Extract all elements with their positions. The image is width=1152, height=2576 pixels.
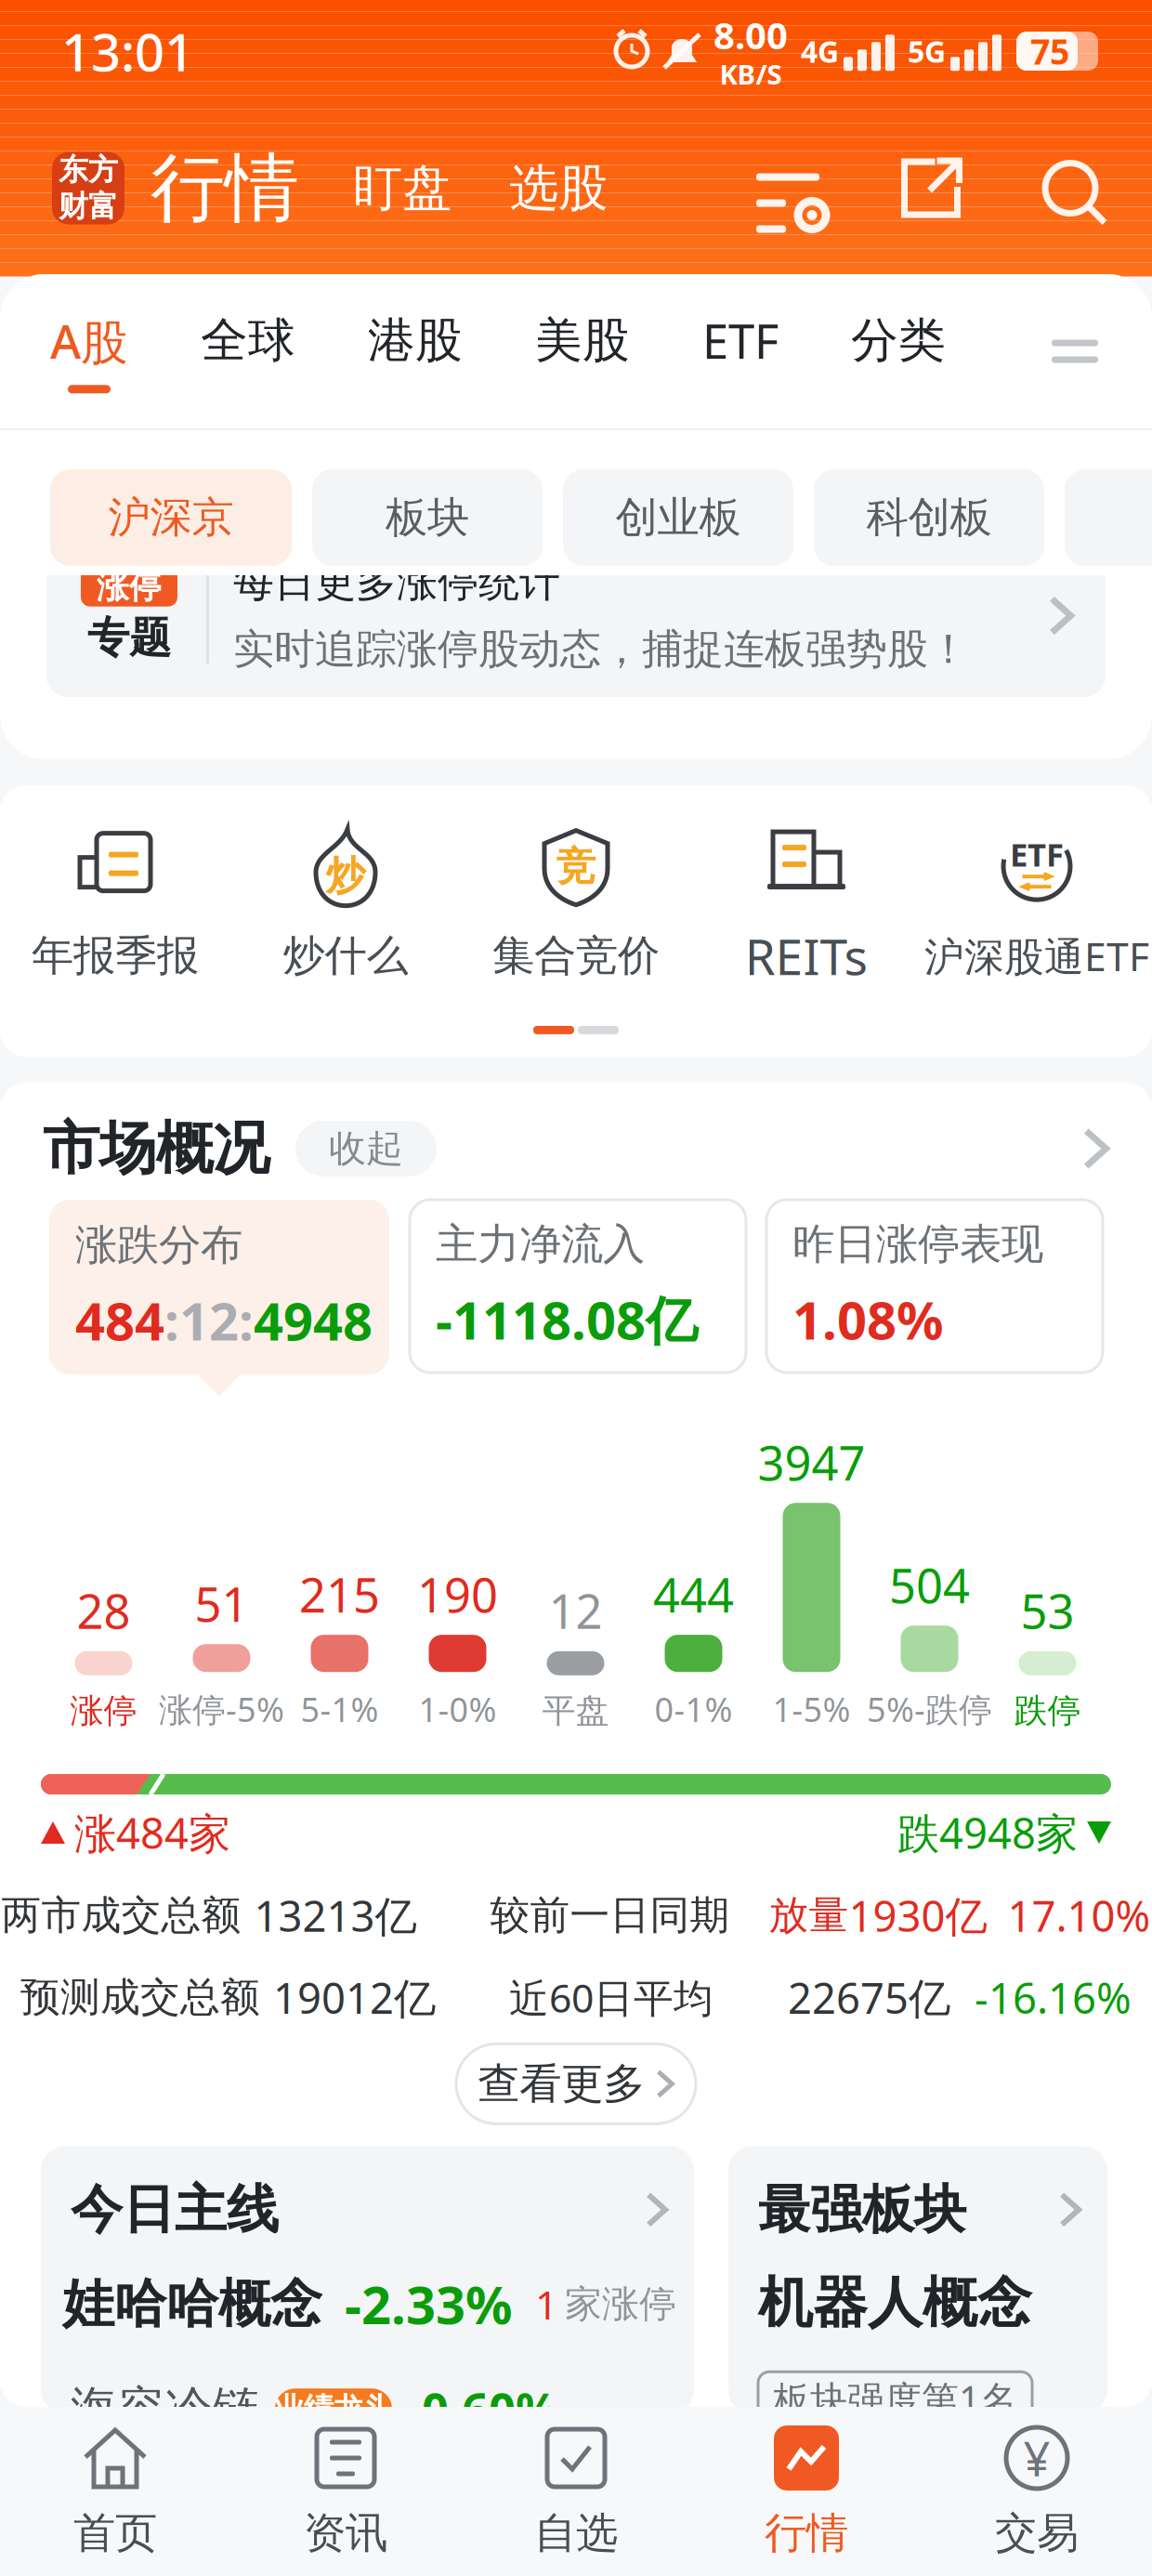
staticText: REITs [745,923,868,989]
staticText: 75 [1030,28,1069,74]
staticText: 两市成交总额 [1,1891,241,1940]
staticText: -1118.08亿 [436,1285,698,1354]
staticText: 家涨停 [565,2281,676,2327]
staticText: 444 [653,1563,734,1626]
staticText: 13:01 [61,17,194,86]
staticText: 5%-跌停 [867,1687,992,1731]
button[interactable]: 炒 [230,826,461,982]
button[interactable]: 年报季报 [0,826,230,982]
staticText: 交易 [995,2507,1079,2559]
button[interactable]: 板块 [312,469,543,566]
staticText: 504 [889,1554,970,1616]
staticText: 1930亿 [849,1887,987,1943]
staticText: 盯盘 [353,158,452,219]
staticText: 沪深股通ETF [924,929,1149,982]
button[interactable]: 美股 [463,312,630,391]
staticText: 跌停 [1014,1690,1081,1731]
staticText: 实时追踪涨停股动态，捕捉连板强势股！ [233,624,969,674]
staticText: ETF [1010,833,1064,876]
staticText: 215 [299,1563,380,1626]
staticText: 首页 [73,2507,157,2559]
staticText: 沪深京 [108,492,234,544]
button[interactable]: 筛选设置 [751,156,825,221]
button[interactable]: 收起 [269,1121,437,1176]
staticText: 放量 [769,1891,849,1940]
button[interactable]: 最强板块 [728,2146,1107,2414]
staticText: 板块强度第1名 [773,2374,1017,2423]
staticText: 创业板 [615,492,741,544]
staticText: 涨停 [70,1690,137,1731]
staticText: 资讯 [304,2507,387,2559]
staticText: 每日更多涨停统计 [233,557,560,607]
button[interactable]: 资讯 [230,2424,461,2559]
button[interactable]: REITs [691,819,922,989]
staticText: 美股 [535,312,630,369]
staticText: 4G [801,31,839,71]
button[interactable]: 选股 [452,158,608,219]
button[interactable]: 昨日涨停表现 [766,1200,1103,1373]
staticText: -0.60% [407,2378,558,2440]
staticText: 跌4948家 [897,1805,1078,1861]
staticText: 机器人概念 [758,2270,1032,2337]
staticText: 3947 [758,1431,865,1494]
button[interactable]: 分类 [779,312,946,391]
staticText: 财富 [59,188,118,225]
staticText: -2.33% [345,2270,513,2339]
button[interactable]: ETF [630,309,779,393]
button[interactable]: 全部分类 [1041,322,1109,381]
button[interactable]: 搜索 [962,157,1102,220]
staticText: 炒什么 [283,930,408,982]
button[interactable]: 分享 [825,157,962,220]
staticText: 最强板块 [758,2178,966,2242]
staticText: 涨484家 [74,1805,230,1861]
staticText: 分类 [851,312,946,369]
staticText: 1-5% [772,1687,851,1731]
staticText: 专题 [87,612,171,664]
staticText: 今日主线 [71,2178,279,2242]
staticText: 娃哈哈概念 [62,2272,322,2336]
button[interactable]: 全球 [128,312,295,391]
button[interactable]: 今日主线 [41,2146,694,2414]
button[interactable]: 涨停 [46,534,1106,697]
button[interactable]: ETF [922,825,1152,982]
button[interactable]: 首页 [0,2424,230,2559]
staticText: 平盘 [542,1690,609,1731]
staticText: 12 [179,1286,239,1355]
staticText: 4948 [254,1286,373,1355]
button[interactable]: 沪深京 [50,469,292,566]
button[interactable]: 行情 [691,2424,922,2559]
button[interactable]: 涨跌分布 [49,1200,389,1397]
staticText: 行情 [151,143,299,234]
staticText: 全球 [201,312,295,369]
button[interactable]: A股 [50,309,128,393]
staticText: 板块 [386,492,469,544]
staticText: 28 [77,1579,131,1642]
button[interactable]: 主力净流入 [410,1200,746,1373]
staticText: ¥ [1023,2427,1050,2489]
staticText: 12 [549,1579,602,1642]
staticText: 1 [535,2278,557,2330]
staticText: 22675亿 [788,1969,950,2025]
staticText: : [239,1286,254,1355]
staticText: 炒 [326,852,366,900]
staticText: 17.10% [1008,1887,1151,1943]
button[interactable]: ¥ [922,2424,1152,2559]
staticText: 近60日平均 [509,1971,713,2024]
staticText: 53 [1021,1579,1074,1642]
staticText: 行情 [765,2507,848,2559]
button[interactable]: 创业板 [563,469,793,566]
staticText: 主力净流入 [436,1218,645,1270]
button[interactable]: 科创板 [814,469,1044,566]
staticText: ETF [702,309,779,372]
staticText: 科创板 [866,492,992,544]
button[interactable]: 港股 [295,312,463,391]
button[interactable]: 竞 [461,826,691,982]
staticText: 0-1% [655,1687,733,1731]
button[interactable]: 盯盘 [299,158,452,219]
staticText: 年报季报 [32,930,199,982]
button[interactable]: 查看更多 [456,2044,696,2124]
staticText: 1-0% [419,1687,497,1731]
staticText: 较前一日同期 [490,1891,730,1940]
button[interactable]: 自选 [461,2424,691,2559]
staticText: 海容冷链 [71,2380,260,2438]
